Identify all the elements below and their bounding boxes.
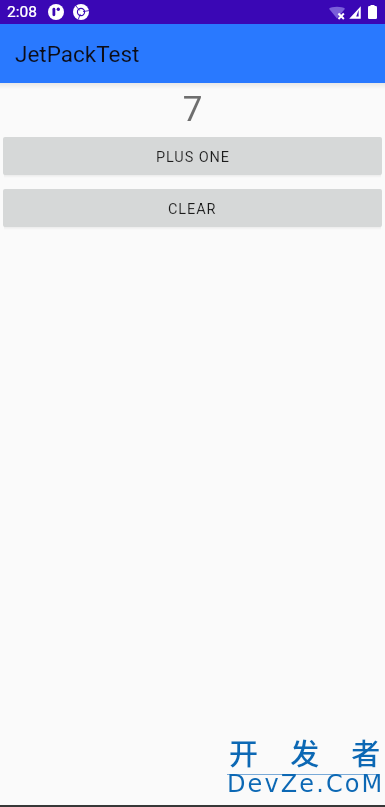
staticText: 2:08 — [7, 3, 37, 21]
staticText: CLEAR — [168, 201, 217, 218]
staticText: DevZe.CoM — [227, 770, 385, 798]
button[interactable]: CLEAR — [3, 189, 382, 227]
staticText: PLUS ONE — [156, 149, 230, 166]
staticText: JetPackTest — [15, 41, 140, 67]
button[interactable]: PLUS ONE — [3, 137, 382, 175]
staticText: 7 — [0, 89, 385, 130]
staticText: 开 发 者 — [229, 731, 385, 773]
